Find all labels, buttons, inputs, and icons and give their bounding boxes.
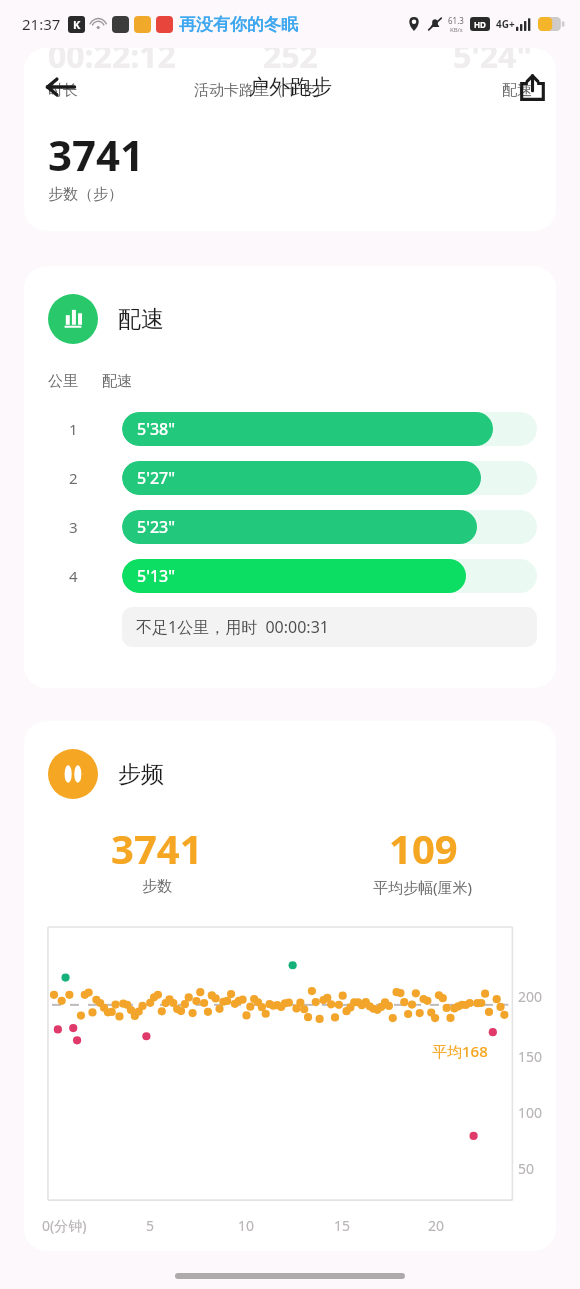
staticText: 20 (428, 1216, 445, 1235)
staticText: 21:37 (22, 14, 61, 34)
button[interactable]: 步频 (48, 749, 164, 799)
staticText: 平均步幅(厘米) (373, 877, 473, 897)
staticText: 平均168 (432, 1041, 488, 1061)
staticText: 200 (518, 987, 543, 1006)
button[interactable]: 不足1公里，用时 00:00:31 (122, 607, 537, 647)
staticText: 5 (146, 1216, 155, 1235)
staticText: HD (474, 19, 486, 30)
staticText: KB/s (450, 26, 463, 34)
staticText: 时长 (48, 81, 194, 100)
staticText: 1 (69, 419, 78, 439)
staticText: 步频 (118, 760, 164, 789)
staticText: 109 (389, 821, 458, 875)
staticText: 5'23" (137, 516, 176, 538)
staticText: 5'27" (137, 467, 176, 489)
staticText: 100 (518, 1103, 543, 1122)
button[interactable]: Back (34, 60, 88, 114)
button[interactable]: Share (506, 61, 558, 113)
staticText: 4 (69, 566, 78, 586)
staticText: 0(分钟) (42, 1216, 87, 1235)
staticText: 配速 (102, 372, 132, 391)
staticText: 配速 (118, 305, 164, 334)
staticText: 步数 (142, 877, 172, 896)
staticText: 步数（步） (48, 185, 123, 204)
staticText: 150 (518, 1047, 543, 1066)
staticText: 不足1公里，用时 00:00:31 (136, 616, 329, 638)
staticText: 活动卡路里（千卡） (194, 81, 429, 100)
staticText: 3741 (111, 821, 203, 875)
staticText: 配速 (429, 81, 532, 100)
button[interactable]: 2 (24, 454, 556, 502)
staticText: 4G+ (496, 17, 515, 31)
staticText: 3741 (48, 126, 145, 183)
button[interactable]: 3 (24, 503, 556, 551)
button[interactable]: 配速 (48, 294, 164, 344)
staticText: 61.3 (448, 15, 464, 26)
staticText: 5'13" (137, 565, 176, 587)
staticText: 公里 (48, 372, 78, 391)
staticText: 5'24" (453, 48, 532, 78)
button[interactable]: 1 (24, 405, 556, 453)
staticText: 252 (263, 48, 318, 78)
button[interactable]: 00:22:12 (24, 48, 556, 231)
staticText: 3 (69, 517, 78, 537)
staticText: 10 (238, 1216, 255, 1235)
staticText: 5'38" (137, 418, 176, 440)
staticText: 50 (518, 1159, 535, 1178)
button[interactable]: 4 (24, 552, 556, 600)
staticText: K (73, 17, 81, 32)
staticText: 再没有你的冬眠 (179, 14, 298, 35)
staticText: 15 (334, 1216, 351, 1235)
staticText: 2 (69, 468, 78, 488)
staticText: 户外跑步 (248, 74, 332, 100)
staticText: 00:22:12 (48, 48, 176, 78)
